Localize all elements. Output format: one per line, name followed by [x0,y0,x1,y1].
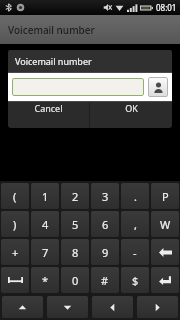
button[interactable]: 0 [61,267,89,293]
button[interactable]: Pick contact [148,77,168,97]
button[interactable]: $ [121,267,149,293]
staticText: $ [132,273,139,288]
button[interactable]: 6 [91,211,119,237]
staticText: , [134,217,137,232]
button[interactable]: left [92,296,133,318]
button[interactable]: P [151,183,179,209]
staticText: 4 [42,217,49,232]
staticText: + [12,245,19,260]
button[interactable]: right [137,296,178,318]
staticText: 9 [102,245,109,260]
button[interactable]: , [121,211,149,237]
button[interactable] [12,78,144,96]
staticText: 2 [72,189,79,204]
button[interactable]: up [2,296,43,318]
button[interactable]: Enter [151,267,179,293]
button[interactable]: 7 [31,239,59,265]
button[interactable]: 3 [91,183,119,209]
button[interactable]: Backspace [151,239,179,265]
button[interactable]: ( [1,183,29,209]
staticText: # [101,273,109,288]
staticText: Voicemail number [15,55,92,67]
button[interactable]: Space [1,267,29,293]
staticText: W [160,217,171,232]
staticText: 08:01 [156,2,177,13]
staticText: ) [13,217,17,232]
staticText: 5 [72,217,79,232]
staticText: 7 [42,245,49,260]
staticText: Voicemail number [8,23,95,37]
staticText: Cancel [34,102,63,114]
button[interactable]: 1 [31,183,59,209]
staticText: OK [125,102,138,114]
button[interactable]: Cancel [8,102,89,114]
staticText: 1 [42,189,49,204]
staticText: P [162,189,169,204]
button[interactable]: down [47,296,88,318]
button[interactable]: 9 [91,239,119,265]
staticText: ( [13,189,17,204]
button[interactable]: - [121,239,149,265]
button[interactable]: 4 [31,211,59,237]
button[interactable]: 8 [61,239,89,265]
staticText: 6 [102,217,109,232]
staticText: . [134,189,137,204]
button[interactable]: W [151,211,179,237]
button[interactable]: * [31,267,59,293]
button[interactable]: # [91,267,119,293]
staticText: 3 [102,189,109,204]
staticText: - [133,245,137,260]
button[interactable]: 5 [61,211,89,237]
staticText: 8 [72,245,79,260]
staticText: * [42,273,49,288]
button[interactable]: 2 [61,183,89,209]
button[interactable]: + [1,239,29,265]
button[interactable]: ) [1,211,29,237]
button[interactable]: . [121,183,149,209]
staticText: 0 [72,273,79,288]
button[interactable]: OK [90,102,172,114]
